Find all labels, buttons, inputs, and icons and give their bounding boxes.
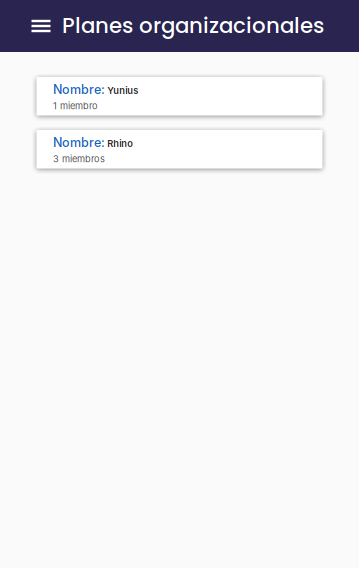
button[interactable]: Nombre:	[36, 77, 322, 115]
staticText: Planes organizacionales	[62, 11, 324, 40]
button[interactable]: Nombre:	[36, 130, 322, 168]
staticText: 3 miembros	[53, 153, 105, 164]
staticText: Rhino	[107, 138, 133, 149]
staticText: Nombre:	[53, 135, 105, 150]
staticText: 1 miembro	[53, 100, 98, 111]
staticText: Nombre:	[53, 82, 105, 97]
button[interactable]: Open navigation menu	[0, 0, 55, 52]
staticText: Yunius	[107, 85, 138, 96]
